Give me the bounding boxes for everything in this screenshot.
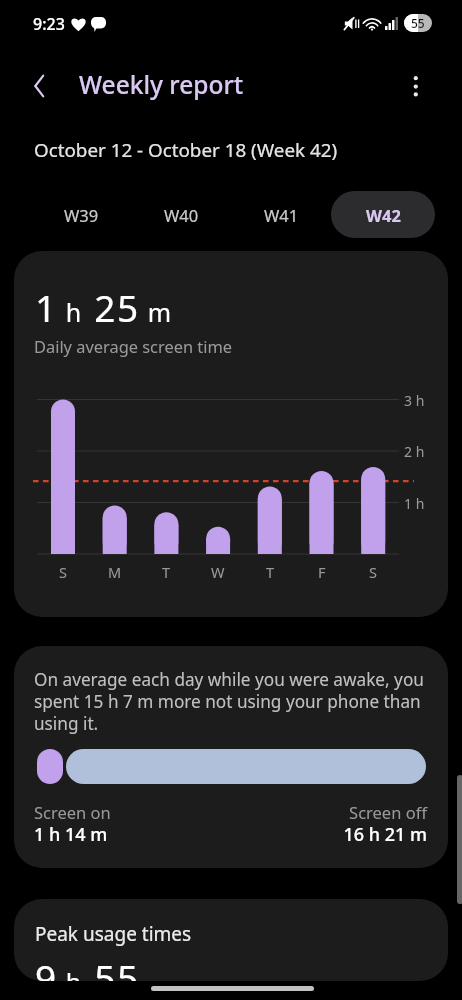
staticText: M <box>108 562 122 582</box>
staticText: Screen on <box>34 801 111 823</box>
button[interactable]: W39 <box>31 191 131 238</box>
button[interactable]: W41 <box>231 191 331 238</box>
staticText: 3 h <box>404 391 425 410</box>
staticText: 9:23 <box>33 13 65 35</box>
staticText: 1 <box>35 282 58 332</box>
staticText: W40 <box>164 204 199 226</box>
button[interactable]: W42 <box>331 191 435 238</box>
button[interactable]: 1 <box>14 251 448 617</box>
staticText: 55 <box>83 952 140 981</box>
staticText: Weekly report <box>79 68 244 101</box>
button[interactable]: Back <box>22 68 58 104</box>
button[interactable]: On average each day while you were awake… <box>14 646 448 868</box>
staticText: 1 h 14 m <box>34 822 108 847</box>
staticText: S <box>369 562 377 582</box>
staticText: 16 h 21 m <box>228 822 427 847</box>
staticText: h <box>58 965 83 981</box>
staticText: m <box>140 295 173 329</box>
staticText: On average each day while you were awake… <box>34 668 426 735</box>
staticText: Screen off <box>228 801 427 823</box>
staticText: October 12 - October 18 (Week 42) <box>34 137 338 163</box>
staticText: 1 h <box>404 494 425 513</box>
staticText: F <box>318 562 326 582</box>
staticText: W39 <box>64 204 99 226</box>
staticText: W41 <box>264 204 299 226</box>
staticText: 9 <box>35 952 58 981</box>
staticText: 55 <box>411 15 425 31</box>
staticText: Daily average screen time <box>34 335 232 357</box>
staticText: Peak usage times <box>35 921 192 947</box>
staticText: 2 h <box>404 442 425 461</box>
staticText: S <box>59 562 67 582</box>
button[interactable]: Peak usage times <box>14 899 448 981</box>
button[interactable]: More options <box>398 68 434 104</box>
staticText: 25 <box>83 282 140 332</box>
button[interactable]: W40 <box>131 191 231 238</box>
staticText: T <box>266 562 275 582</box>
staticText: W <box>211 562 225 582</box>
staticText: W42 <box>366 204 401 226</box>
staticText: T <box>162 562 171 582</box>
staticText: h <box>58 295 83 329</box>
